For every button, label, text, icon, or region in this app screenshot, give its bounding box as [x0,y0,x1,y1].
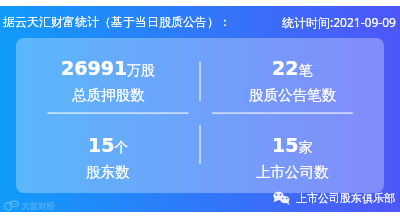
button[interactable]: 上市公司股东俱乐部 WeChat [272,190,396,206]
staticText: 15个 [88,134,129,156]
staticText: 大蓝财经 [21,201,55,212]
staticText: 总质押股数 [72,86,145,104]
button[interactable]: 15家 [200,115,384,193]
staticText: 据云天汇财富统计（基于当日股质公告）： [3,14,231,29]
staticText: 统计时间:2021-09-09 [282,14,396,30]
staticText: 股东数 [86,163,130,181]
staticText: 股质公告笔数 [249,86,336,104]
button[interactable]: 15个 [16,115,200,193]
staticText: 26991万股 [61,57,156,79]
button[interactable]: 22笔 [200,38,384,115]
staticText: 15家 [272,134,313,156]
staticText: 22笔 [272,57,313,79]
staticText: 上市公司数 [256,163,329,181]
button[interactable]: 26991万股 [16,38,200,115]
staticText: 上市公司股东俱乐部 [296,191,395,205]
